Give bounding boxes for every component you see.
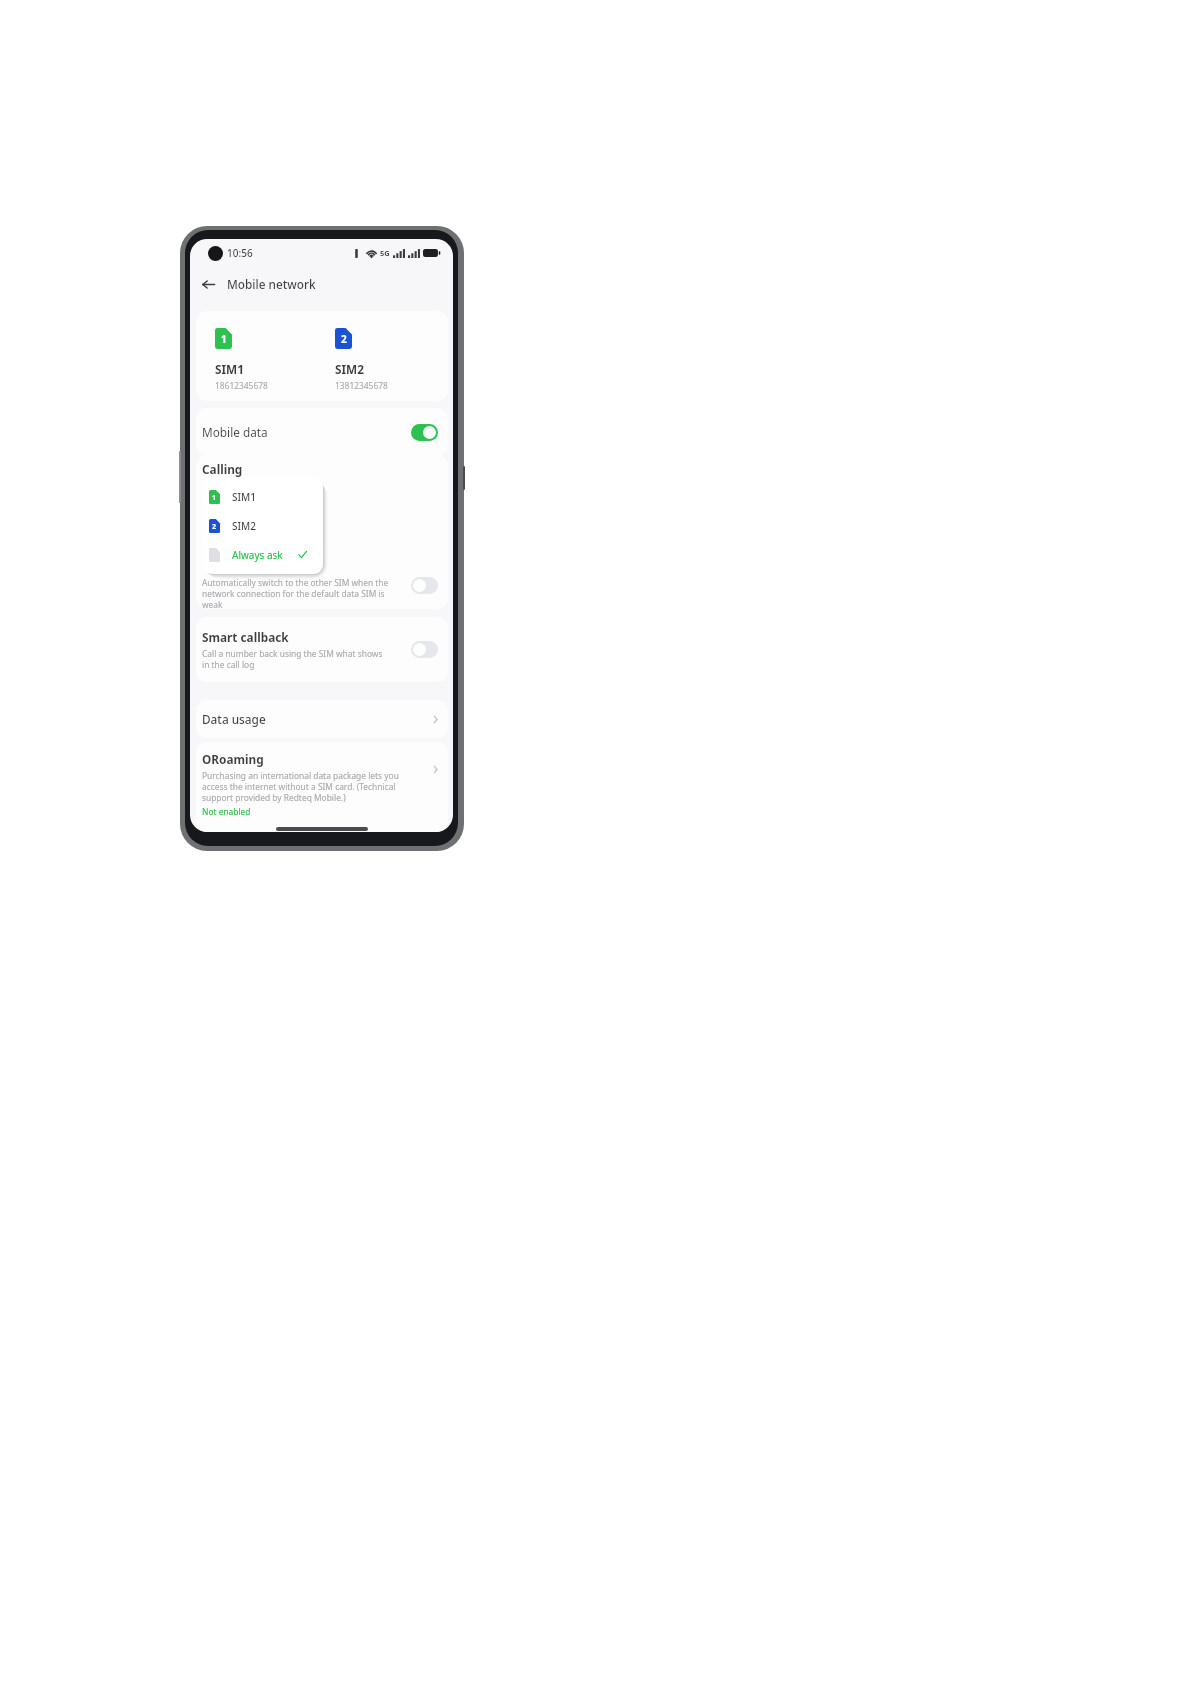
staticText: Mobile data	[202, 424, 268, 440]
button[interactable]: Smart callback	[196, 617, 448, 682]
button[interactable]: 1	[196, 311, 316, 401]
staticText: Always ask	[232, 548, 283, 562]
staticText: SIM2	[232, 519, 256, 533]
button[interactable]: 2	[316, 311, 448, 401]
button[interactable]: Turn off	[411, 424, 438, 441]
button[interactable]: Data usage	[196, 700, 448, 738]
staticText: Data usage	[202, 711, 266, 727]
staticText: 5G	[380, 248, 390, 258]
staticText: Smart callback	[202, 629, 289, 645]
staticText: 1	[221, 332, 227, 346]
button[interactable]: Back	[198, 274, 218, 294]
staticText: Purchasing an international data package…	[202, 770, 423, 803]
staticText: 13812345678	[335, 380, 388, 391]
staticText: 18612345678	[215, 380, 268, 391]
staticText: 2	[212, 522, 217, 532]
staticText: Mobile network	[227, 276, 316, 292]
staticText: SIM2	[335, 361, 364, 377]
staticText: SIM1	[232, 490, 256, 504]
button[interactable]: Automatically switch to the other SIM wh…	[196, 577, 448, 609]
button[interactable]: ORoaming	[196, 742, 448, 832]
staticText: 10:56	[227, 246, 253, 260]
staticText: Automatically switch to the other SIM wh…	[202, 577, 391, 609]
staticText: Not enabled	[202, 806, 251, 817]
button[interactable]: Mobile data	[196, 408, 448, 456]
staticText: 1	[212, 493, 217, 503]
button[interactable]: 2	[203, 511, 323, 540]
button[interactable]: Turn on	[411, 641, 438, 658]
staticText: SIM1	[215, 361, 244, 377]
staticText: Call a number back using the SIM what sh…	[202, 648, 391, 670]
staticText: 2	[341, 332, 347, 346]
staticText: Calling	[202, 461, 243, 477]
button[interactable]: Turn on	[411, 577, 438, 594]
button[interactable]: Always ask	[203, 540, 323, 569]
staticText: ORoaming	[202, 751, 264, 767]
button[interactable]: 1	[203, 483, 323, 511]
